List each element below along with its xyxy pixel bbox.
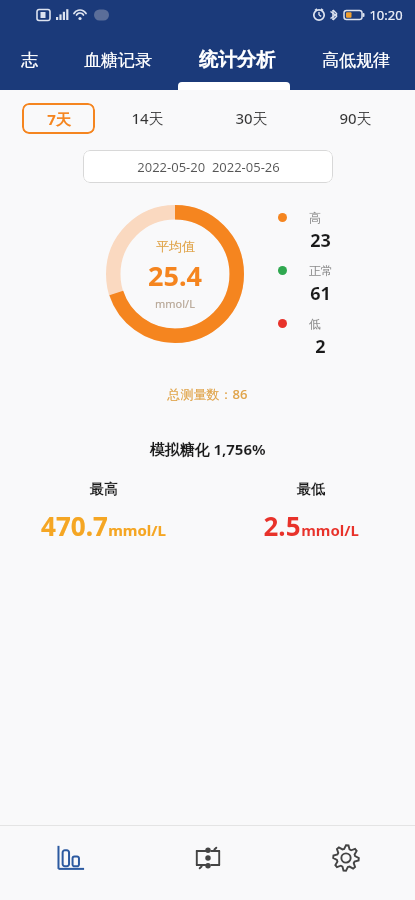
staticText: 高低规律 [322, 50, 390, 71]
button[interactable]: 7天 [22, 103, 95, 134]
staticText: mmol/L [301, 520, 359, 540]
staticText: 23 [310, 228, 331, 253]
staticText: 61 [310, 281, 331, 306]
staticText: 90天 [339, 108, 372, 128]
staticText: 2.5 [263, 508, 301, 543]
staticText: mmol/L [108, 520, 166, 540]
staticText: 统计分析 [199, 48, 275, 72]
button[interactable]: 志 [0, 30, 58, 90]
staticText: 最高 [90, 481, 118, 499]
button[interactable]: 30天 [199, 100, 303, 136]
staticText: 10:20 [369, 6, 403, 24]
staticText: 7天 [47, 109, 71, 129]
button[interactable]: 血糖记录 [58, 30, 177, 90]
staticText: 2022-05-20 2022-05-26 [137, 158, 280, 176]
staticText: 模拟糖化 1,756% [0, 439, 415, 459]
staticText: 14天 [131, 108, 164, 128]
staticText: 平均值 [156, 238, 195, 254]
button[interactable]: Statistics [0, 826, 139, 900]
button[interactable]: 统计分析 [177, 30, 296, 90]
button[interactable]: 高低规律 [296, 30, 415, 90]
staticText: 470.7 [41, 508, 108, 543]
staticText: 30天 [235, 108, 268, 128]
staticText: 正常 [309, 263, 333, 278]
staticText: 25.4 [148, 257, 202, 294]
staticText: mmol/L [155, 296, 195, 311]
staticText: 高 [309, 210, 321, 225]
staticText: 最低 [297, 481, 325, 499]
staticText: 志 [21, 50, 38, 71]
button[interactable]: 14天 [95, 100, 199, 136]
button[interactable]: 90天 [303, 100, 407, 136]
staticText: 低 [309, 316, 321, 331]
staticText: 总测量数：86 [0, 385, 415, 403]
button[interactable]: Settings [277, 826, 415, 900]
button[interactable]: Devices [139, 826, 277, 900]
staticText: 2 [315, 334, 326, 359]
staticText: 血糖记录 [84, 50, 152, 71]
button[interactable]: 2022-05-20 2022-05-26 [83, 150, 333, 183]
